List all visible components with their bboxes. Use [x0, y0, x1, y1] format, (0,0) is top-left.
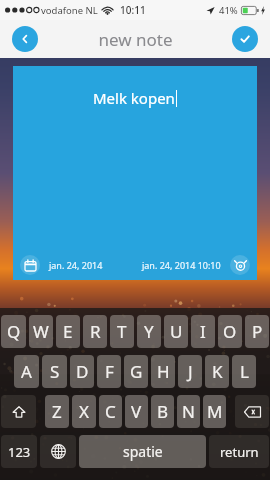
button[interactable]: Shift: [1, 395, 36, 428]
staticText: A: [21, 360, 32, 383]
staticText: new note: [98, 28, 173, 51]
button[interactable]: I: [191, 315, 215, 348]
button[interactable]: R: [83, 315, 107, 348]
staticText: F: [105, 360, 114, 383]
staticText: X: [79, 400, 89, 423]
staticText: I: [200, 320, 206, 343]
staticText: U: [170, 320, 183, 343]
staticText: 123: [8, 443, 31, 461]
button[interactable]: O: [218, 315, 242, 348]
staticText: M: [207, 400, 223, 423]
button[interactable]: Back: [12, 26, 38, 52]
button[interactable]: M: [203, 395, 226, 428]
button[interactable]: S: [42, 355, 67, 388]
button[interactable]: G: [124, 355, 148, 388]
staticText: O: [223, 320, 237, 343]
staticText: D: [76, 360, 89, 383]
button[interactable]: Save note: [232, 26, 258, 52]
button[interactable]: Z: [45, 395, 69, 428]
staticText: G: [130, 360, 143, 383]
staticText: return: [220, 443, 259, 461]
button[interactable]: U: [164, 315, 188, 348]
button[interactable]: F: [97, 355, 121, 388]
staticText: J: [188, 360, 193, 383]
staticText: N: [182, 400, 195, 423]
button[interactable]: spatie: [79, 435, 206, 468]
staticText: K: [212, 360, 223, 383]
button[interactable]: A: [14, 355, 39, 388]
button[interactable]: B: [151, 395, 174, 428]
staticText: jan. 24, 2014: [49, 259, 103, 271]
button[interactable]: C: [99, 395, 122, 428]
staticText: L: [240, 360, 249, 383]
button[interactable]: Switch keyboard: [40, 435, 76, 468]
button[interactable]: Q: [1, 315, 26, 348]
staticText: R: [90, 320, 101, 343]
staticText: vodafone NL: [41, 4, 98, 17]
staticText: S: [50, 360, 60, 383]
button[interactable]: V: [125, 395, 148, 428]
button[interactable]: D: [70, 355, 94, 388]
button[interactable]: Y: [137, 315, 161, 348]
staticText: B: [157, 400, 169, 423]
button[interactable]: Set reminder: [230, 255, 250, 275]
button[interactable]: L: [232, 355, 256, 388]
button[interactable]: W: [29, 315, 53, 348]
button[interactable]: Backspace: [235, 395, 269, 428]
staticText: Q: [7, 320, 21, 343]
button[interactable]: 123: [1, 435, 37, 468]
staticText: E: [63, 320, 73, 343]
staticText: 10:11: [120, 3, 146, 17]
button[interactable]: Set date: [20, 255, 40, 275]
button[interactable]: T: [110, 315, 134, 348]
button[interactable]: H: [151, 355, 175, 388]
button[interactable]: X: [72, 395, 96, 428]
staticText: jan. 24, 2014 10:10: [142, 259, 221, 271]
staticText: V: [131, 400, 142, 423]
staticText: Y: [144, 320, 154, 343]
button[interactable]: J: [178, 355, 202, 388]
button[interactable]: E: [56, 315, 80, 348]
staticText: T: [117, 320, 127, 343]
staticText: C: [105, 400, 116, 423]
button[interactable]: K: [205, 355, 229, 388]
button[interactable]: N: [177, 395, 200, 428]
button[interactable]: Melk kopen: [13, 66, 257, 280]
staticText: P: [252, 320, 263, 343]
staticText: 41%: [219, 4, 238, 17]
button[interactable]: return: [209, 435, 269, 468]
staticText: Z: [52, 400, 62, 423]
staticText: W: [33, 320, 49, 343]
staticText: H: [157, 360, 170, 383]
staticText: Melk kopen: [93, 88, 175, 108]
button[interactable]: P: [245, 315, 269, 348]
staticText: spatie: [123, 442, 163, 461]
